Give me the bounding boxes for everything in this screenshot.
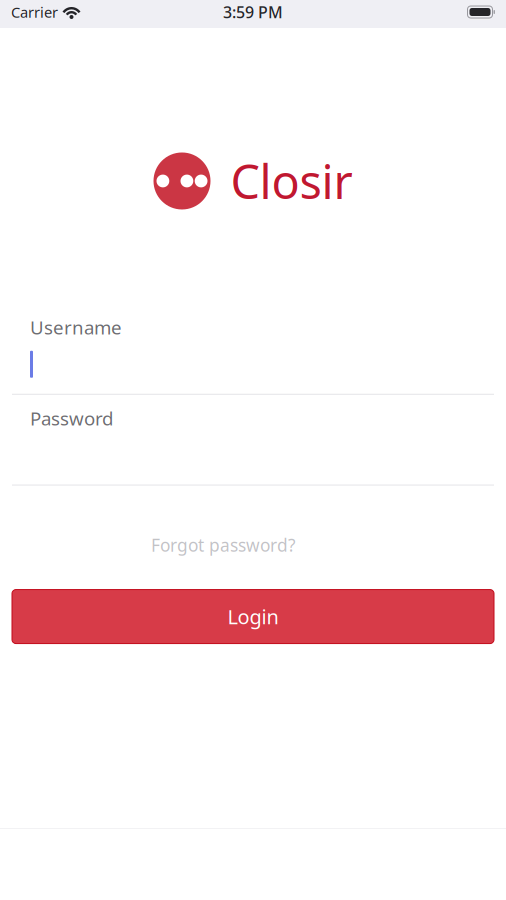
staticText: Login bbox=[227, 603, 278, 630]
staticText: 3:59 PM bbox=[223, 1, 283, 23]
staticText: Carrier bbox=[11, 2, 58, 22]
button[interactable]: Password bbox=[0, 395, 506, 485]
button[interactable]: Login bbox=[12, 590, 494, 644]
button[interactable]: Forgot password? bbox=[0, 534, 506, 557]
staticText: Forgot password? bbox=[151, 534, 296, 557]
staticText: Password bbox=[30, 406, 113, 431]
staticText: Username bbox=[30, 315, 122, 340]
button[interactable]: Username bbox=[0, 315, 506, 394]
staticText: Closir bbox=[230, 150, 352, 212]
